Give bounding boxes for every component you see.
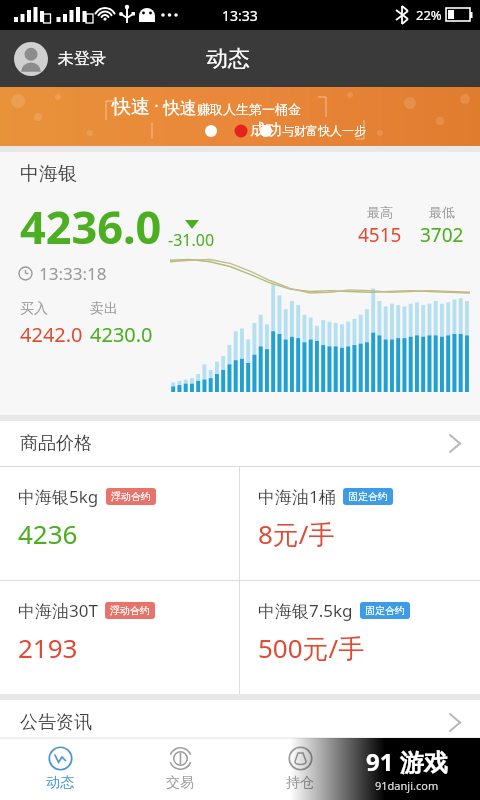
staticText: 固定合约	[365, 604, 405, 617]
staticText: ·	[150, 95, 163, 117]
staticText: 买入	[20, 300, 90, 318]
staticText: 浮动合约	[110, 604, 150, 617]
staticText: 中海油1桶	[258, 485, 336, 508]
staticText: 中海银5kg	[18, 485, 99, 508]
button[interactable]: 公告资讯	[0, 700, 480, 745]
staticText: 8元/手	[258, 516, 335, 552]
staticText: 中海油30T	[18, 599, 98, 622]
button[interactable]: 中海银	[0, 152, 480, 415]
button[interactable]: 动态	[0, 738, 120, 800]
staticText: 中海银	[20, 162, 77, 186]
staticText: 商品价格	[20, 432, 92, 455]
staticText: 91danji.com	[375, 778, 439, 793]
button[interactable]: 持仓	[240, 738, 360, 800]
staticText: -31.00	[168, 229, 215, 251]
staticText: 固定合约	[348, 490, 388, 503]
staticText: 3702	[420, 222, 464, 248]
staticText: 500元/手	[258, 630, 365, 666]
staticText: 4236	[18, 516, 78, 551]
staticText: 4236.0	[20, 196, 162, 257]
button[interactable]: 未登录	[14, 42, 106, 76]
staticText: 动态	[206, 45, 250, 73]
staticText: 卖出	[90, 300, 118, 318]
staticText: 我的	[406, 774, 434, 792]
staticText: 13:33	[222, 6, 258, 25]
staticText: 赚取人生第一桶金	[197, 101, 301, 117]
staticText: 13:33:18	[39, 262, 107, 285]
button[interactable]: 中海银5kg	[0, 467, 239, 580]
button[interactable]: 中海油1桶	[240, 467, 480, 580]
button[interactable]: 商品价格	[0, 421, 480, 466]
staticText: 91 游戏	[366, 745, 448, 778]
staticText: 最低	[429, 204, 455, 220]
button[interactable]: 我的	[360, 738, 480, 800]
staticText: 2193	[18, 630, 78, 665]
staticText: 4242.0	[20, 321, 90, 348]
staticText: 浮动合约	[111, 490, 151, 503]
button[interactable]: 交易	[120, 738, 240, 800]
staticText: 公告资讯	[20, 711, 92, 734]
staticText: 交易	[166, 774, 194, 792]
staticText: 成功	[250, 120, 282, 140]
staticText: 最高	[367, 204, 393, 220]
staticText: 4230.0	[90, 321, 153, 348]
staticText: 中海银7.5kg	[258, 599, 353, 622]
button[interactable]: 中海银7.5kg	[240, 581, 480, 694]
staticText: 4515	[358, 222, 402, 248]
staticText: 与财富快人一步	[282, 123, 366, 138]
staticText: 未登录	[58, 49, 106, 69]
button[interactable]: 中海油30T	[0, 581, 239, 694]
staticText: 22%	[416, 6, 442, 24]
staticText: 持仓	[286, 774, 314, 792]
staticText: 快速	[112, 95, 150, 119]
staticText: 快速	[163, 98, 197, 119]
staticText: 动态	[46, 774, 74, 792]
button[interactable]: 快速	[0, 87, 480, 146]
